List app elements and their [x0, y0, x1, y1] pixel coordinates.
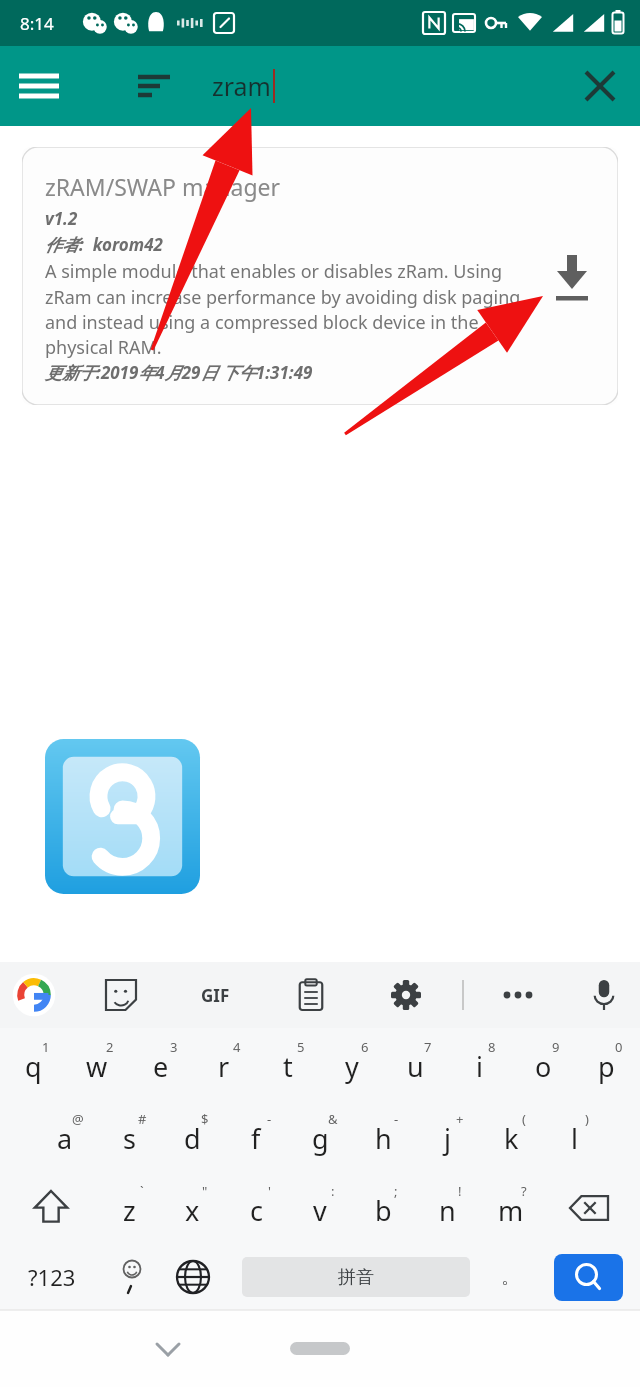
- button[interactable]: 拼音: [242, 1257, 470, 1297]
- staticText: -: [267, 1110, 272, 1128]
- staticText: f: [251, 1120, 261, 1157]
- staticText: 3: [170, 1038, 178, 1056]
- staticText: e: [153, 1048, 169, 1085]
- button[interactable]: Search: [554, 1254, 623, 1301]
- staticText: ;: [394, 1182, 398, 1200]
- staticText: zram: [212, 69, 271, 103]
- button[interactable]: 。: [482, 1249, 538, 1305]
- staticText: b: [375, 1192, 392, 1229]
- button[interactable]: c: [226, 1172, 286, 1244]
- button[interactable]: a: [35, 1100, 95, 1172]
- staticText: i: [476, 1048, 483, 1085]
- button[interactable]: o: [513, 1028, 573, 1100]
- staticText: j: [444, 1120, 451, 1157]
- button[interactable]: Home: [290, 1342, 350, 1355]
- button[interactable]: More options: [490, 967, 546, 1023]
- staticText: -: [394, 1110, 399, 1128]
- button[interactable]: Google: [6, 967, 62, 1023]
- button[interactable]: m: [481, 1172, 541, 1244]
- button[interactable]: ?123: [12, 1246, 92, 1308]
- staticText: v: [313, 1192, 327, 1229]
- staticText: zRAM/SWAP manager: [45, 171, 281, 202]
- staticText: @: [72, 1110, 84, 1128]
- staticText: s: [123, 1120, 136, 1157]
- staticText: 6: [361, 1038, 369, 1056]
- button[interactable]: zRAM/SWAP manager: [22, 147, 618, 405]
- button[interactable]: p: [576, 1028, 636, 1100]
- staticText: &: [328, 1110, 338, 1128]
- button[interactable]: s: [99, 1100, 159, 1172]
- button[interactable]: Stickers: [93, 967, 149, 1023]
- staticText: v1.2: [45, 207, 78, 230]
- button[interactable]: l: [544, 1100, 604, 1172]
- button[interactable]: Settings: [378, 967, 434, 1023]
- button[interactable]: r: [194, 1028, 254, 1100]
- button[interactable]: Switch language: [162, 1246, 224, 1308]
- button[interactable]: f: [226, 1100, 286, 1172]
- staticText: A simple module that enables or disables…: [45, 259, 525, 359]
- staticText: w: [86, 1048, 108, 1085]
- button[interactable]: Emoji and comma: [100, 1246, 162, 1308]
- button[interactable]: Voice input: [576, 967, 632, 1023]
- button[interactable]: g: [290, 1100, 350, 1172]
- button[interactable]: x: [162, 1172, 222, 1244]
- staticText: ): [585, 1110, 589, 1128]
- staticText: ?123: [28, 1262, 76, 1292]
- staticText: 5: [297, 1038, 305, 1056]
- staticText: 。: [501, 1266, 519, 1289]
- button[interactable]: Clear search: [572, 58, 628, 114]
- button[interactable]: u: [385, 1028, 445, 1100]
- button[interactable]: d: [162, 1100, 222, 1172]
- button[interactable]: y: [322, 1028, 382, 1100]
- button[interactable]: z: [99, 1172, 159, 1244]
- button[interactable]: Sort: [126, 58, 182, 114]
- staticText: :: [331, 1182, 335, 1200]
- staticText: 作者: korom42: [45, 233, 163, 256]
- button[interactable]: h: [353, 1100, 413, 1172]
- button[interactable]: Hide keyboard: [140, 1321, 196, 1377]
- button[interactable]: k: [481, 1100, 541, 1172]
- button[interactable]: q: [3, 1028, 63, 1100]
- staticText: 0: [615, 1038, 623, 1056]
- staticText: GIF: [201, 984, 230, 1007]
- staticText: r: [218, 1048, 230, 1085]
- staticText: 拼音: [338, 1266, 374, 1289]
- button[interactable]: i: [449, 1028, 509, 1100]
- staticText: k: [504, 1120, 519, 1157]
- staticText: 8:14: [20, 12, 54, 35]
- button[interactable]: Download: [544, 245, 600, 301]
- staticText: `: [140, 1182, 144, 1200]
- button[interactable]: Backspace: [558, 1177, 620, 1239]
- staticText: 2: [106, 1038, 114, 1056]
- button[interactable]: e: [131, 1028, 191, 1100]
- staticText: ': [268, 1182, 271, 1200]
- button[interactable]: w: [67, 1028, 127, 1100]
- staticText: 更新于:2019年4月29日 下午1:31:49: [45, 361, 313, 384]
- staticText: 8: [488, 1038, 496, 1056]
- staticText: +: [456, 1110, 464, 1128]
- button[interactable]: Menu: [10, 57, 68, 115]
- staticText: ": [202, 1182, 208, 1200]
- staticText: !: [458, 1182, 462, 1200]
- staticText: q: [25, 1048, 42, 1085]
- staticText: c: [250, 1192, 263, 1229]
- button[interactable]: t: [258, 1028, 318, 1100]
- staticText: t: [283, 1048, 293, 1085]
- staticText: h: [375, 1120, 392, 1157]
- button[interactable]: n: [417, 1172, 477, 1244]
- staticText: z: [123, 1192, 136, 1229]
- staticText: $: [201, 1110, 209, 1128]
- button[interactable]: j: [417, 1100, 477, 1172]
- button[interactable]: GIF: [187, 967, 243, 1023]
- staticText: ?: [521, 1182, 527, 1200]
- staticText: g: [312, 1120, 329, 1157]
- button[interactable]: v: [290, 1172, 350, 1244]
- staticText: y: [345, 1048, 359, 1085]
- staticText: u: [407, 1048, 424, 1085]
- staticText: (: [522, 1110, 526, 1128]
- button[interactable]: Clipboard: [283, 967, 339, 1023]
- staticText: a: [57, 1120, 73, 1157]
- button[interactable]: Shift: [20, 1177, 82, 1239]
- button[interactable]: b: [353, 1172, 413, 1244]
- staticText: m: [498, 1192, 524, 1229]
